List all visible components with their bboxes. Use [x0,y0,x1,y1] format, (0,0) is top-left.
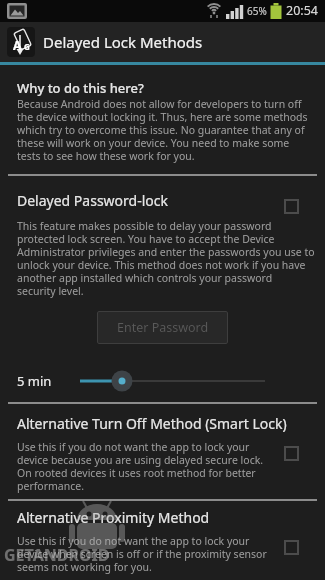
staticText: Delayed Password-lock [17,191,168,210]
staticText: 20:54 [286,2,318,19]
staticText: 65% [247,4,267,18]
staticText: Alternative Proximity Method [17,508,210,527]
staticText: Why to do this here? [17,79,144,97]
staticText: This feature makes possible to delay you… [17,219,315,298]
button[interactable] [0,366,325,396]
staticText: Because Android does not allow for devel… [17,97,308,163]
button[interactable]: Enter Password [97,311,228,344]
staticText: Use this if you do not want the app to l… [17,534,267,574]
staticText: GETANDROID [4,544,110,566]
staticText: A [13,37,22,53]
staticText: 5 min [17,372,52,390]
staticText: Alternative Turn Off Method (Smart Lock) [17,414,287,433]
staticText: G [24,41,30,52]
button[interactable] [284,540,299,555]
staticText: Use this if you do not want the app to l… [17,440,264,493]
button[interactable] [284,446,299,461]
staticText: Delayed Lock Methods [43,32,203,52]
button[interactable] [284,199,299,214]
staticText: Enter Password [117,319,209,336]
